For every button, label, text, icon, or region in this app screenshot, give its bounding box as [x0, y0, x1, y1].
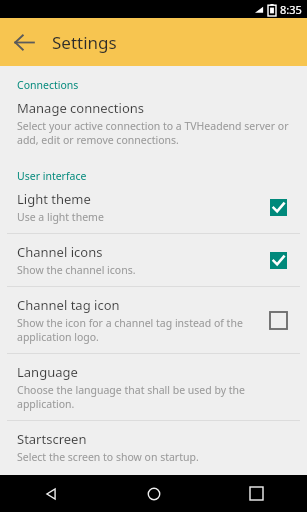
staticText: Show the channel icons. [17, 263, 136, 277]
button[interactable]: Startscreen [0, 421, 307, 473]
staticText: Light theme [17, 190, 91, 208]
staticText: Connections [17, 78, 79, 92]
button[interactable]: Recents [205, 475, 307, 512]
staticText: Manage connections [17, 99, 145, 117]
button[interactable]: Light theme [263, 192, 293, 222]
button[interactable]: Back [6, 24, 42, 60]
staticText: 8:35 [280, 2, 302, 17]
button[interactable]: Language [0, 354, 307, 420]
staticText: Language [17, 363, 78, 381]
button[interactable]: Home [103, 475, 205, 512]
button[interactable]: Light theme [0, 190, 307, 233]
button[interactable]: Channel tag icon [263, 305, 293, 335]
staticText: User interface [17, 169, 87, 183]
staticText: Select the screen to show on startup. [17, 450, 199, 464]
button[interactable]: Back [0, 475, 103, 512]
button[interactable]: Manage connections [0, 99, 307, 157]
button[interactable]: Channel icons [0, 234, 307, 286]
button[interactable]: Channel tag icon [0, 287, 307, 353]
button[interactable]: Channel icons [263, 245, 293, 275]
staticText: Select your active connection to a TVHea… [17, 119, 293, 147]
staticText: Show the icon for a channel tag instead … [17, 316, 253, 344]
staticText: Startscreen [17, 430, 87, 448]
staticText: Choose the language that shall be used b… [17, 383, 293, 411]
staticText: Channel tag icon [17, 296, 120, 314]
staticText: Channel icons [17, 243, 103, 261]
staticText: Settings [52, 31, 117, 54]
staticText: Use a light theme [17, 210, 104, 224]
